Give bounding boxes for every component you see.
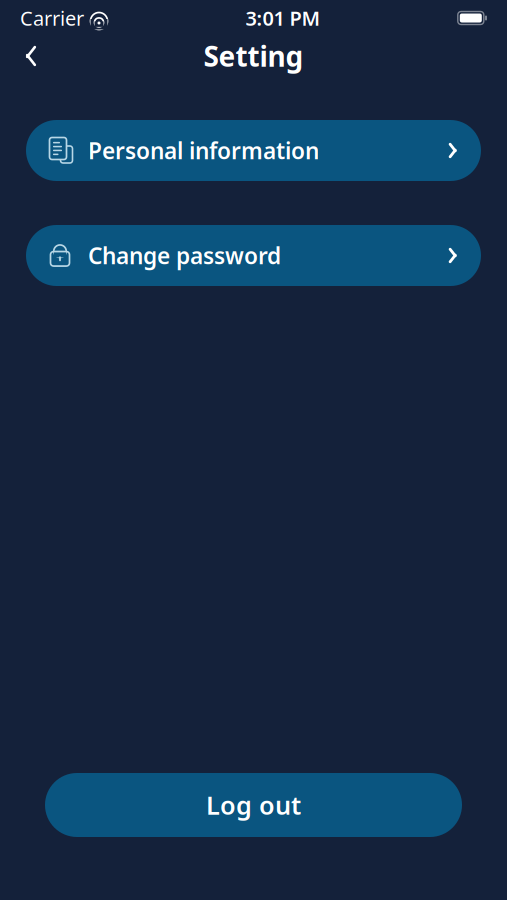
staticText: Carrier: [20, 5, 84, 31]
staticText: Change password: [88, 240, 281, 270]
button[interactable]: Back: [9, 34, 53, 78]
staticText: Log out: [206, 788, 301, 822]
button[interactable]: Personal information: [26, 120, 481, 181]
staticText: Setting: [203, 37, 303, 75]
staticText: 3:01 PM: [245, 5, 320, 31]
staticText: Personal information: [88, 135, 319, 165]
button[interactable]: Log out: [45, 773, 462, 837]
button[interactable]: Change password: [26, 225, 481, 286]
